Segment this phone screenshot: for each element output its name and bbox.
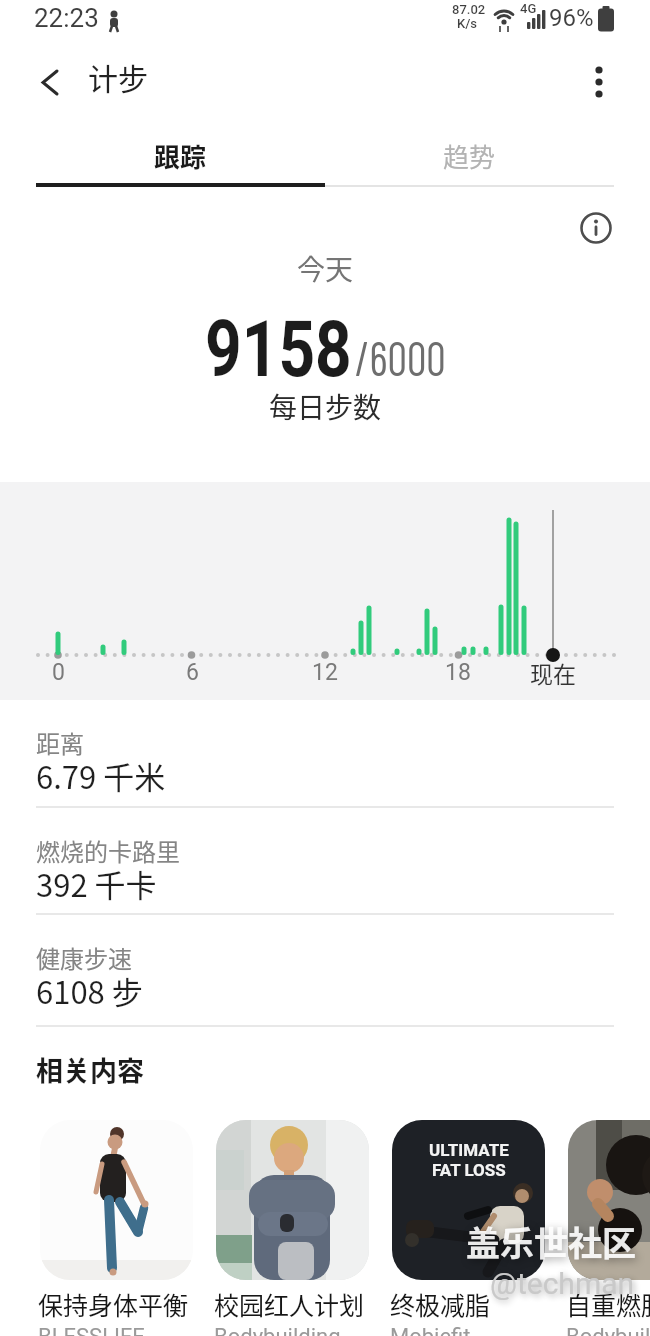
button[interactable]: [0, 915, 650, 1025]
staticText: 燃烧的卡路里: [36, 833, 180, 868]
button[interactable]: [40, 1120, 193, 1280]
staticText: 健康步速: [36, 940, 132, 975]
staticText: @techman: [490, 1266, 635, 1301]
staticText: ULTIMATE: [429, 1140, 509, 1160]
button[interactable]: [576, 58, 622, 106]
button[interactable]: ULTIMATE: [392, 1120, 545, 1280]
staticText: Bodybuilding: [566, 1324, 650, 1336]
staticText: 6: [186, 659, 199, 686]
button[interactable]: 跟踪: [36, 133, 325, 179]
staticText: 距离: [36, 725, 84, 760]
staticText: 校园红人计划: [214, 1286, 365, 1322]
staticText: 96%: [549, 4, 594, 32]
staticText: 9158: [205, 304, 353, 395]
staticText: 18: [445, 659, 471, 686]
staticText: 盖乐世社区: [466, 1217, 636, 1266]
staticText: 跟踪: [154, 137, 207, 175]
staticText: 392 千卡: [36, 861, 157, 906]
button[interactable]: [0, 712, 650, 806]
button[interactable]: [216, 1120, 369, 1280]
staticText: 今天: [297, 248, 354, 289]
button[interactable]: [0, 808, 650, 913]
button[interactable]: 趋势: [325, 133, 614, 179]
staticText: FAT LOSS: [432, 1160, 506, 1180]
button[interactable]: [574, 206, 618, 250]
staticText: 6.79 千米: [36, 753, 166, 798]
staticText: 87.02: [452, 2, 486, 17]
staticText: 现在: [530, 656, 576, 689]
staticText: K/s: [457, 16, 478, 31]
staticText: Mobiefit: [390, 1324, 471, 1336]
staticText: 12: [312, 659, 338, 686]
staticText: Bodybuilding: [214, 1324, 341, 1336]
staticText: 4G: [520, 1, 537, 16]
staticText: 6108 步: [36, 968, 143, 1013]
staticText: 22:23: [34, 3, 99, 33]
staticText: 保持身体平衡: [38, 1286, 189, 1322]
staticText: BLESSLIFE: [38, 1324, 145, 1336]
button[interactable]: [28, 60, 72, 104]
staticText: 相关内容: [36, 1050, 144, 1089]
staticText: 0: [52, 659, 65, 686]
staticText: 每日步数: [269, 386, 382, 427]
button[interactable]: [568, 1120, 650, 1280]
staticText: 趋势: [443, 137, 496, 175]
staticText: 终极减脂: [390, 1286, 491, 1322]
staticText: 自重燃脂: [566, 1286, 650, 1322]
staticText: 计步: [88, 55, 148, 98]
staticText: /6000: [355, 328, 446, 386]
